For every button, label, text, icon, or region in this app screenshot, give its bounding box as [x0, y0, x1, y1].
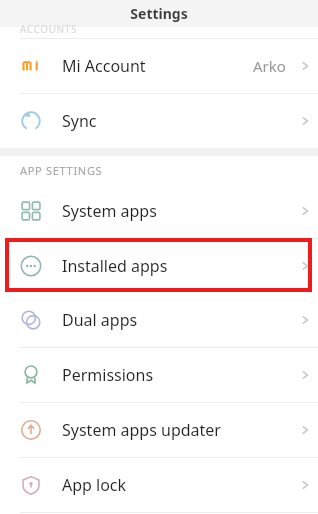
staticText: System apps updater: [62, 419, 292, 441]
button[interactable]: Permissions: [0, 348, 318, 402]
button[interactable]: Sync: [0, 94, 318, 148]
staticText: Permissions: [62, 364, 292, 386]
staticText: Mi Account: [62, 55, 253, 77]
button[interactable]: Installed apps: [0, 239, 318, 293]
button[interactable]: System apps updater: [0, 403, 318, 457]
staticText: Arko: [253, 56, 286, 76]
staticText: ACCOUNTS: [20, 22, 77, 33]
staticText: APP SETTINGS: [20, 163, 103, 178]
button[interactable]: Mi Account: [0, 39, 318, 93]
staticText: Installed apps: [62, 255, 292, 277]
button[interactable]: App lock: [0, 458, 318, 512]
staticText: Dual apps: [62, 309, 292, 331]
staticText: Settings: [130, 4, 188, 23]
button[interactable]: Dual apps: [0, 293, 318, 347]
staticText: Sync: [62, 110, 292, 132]
staticText: App lock: [62, 474, 292, 496]
staticText: System apps: [62, 200, 292, 222]
button[interactable]: System apps: [0, 184, 318, 238]
